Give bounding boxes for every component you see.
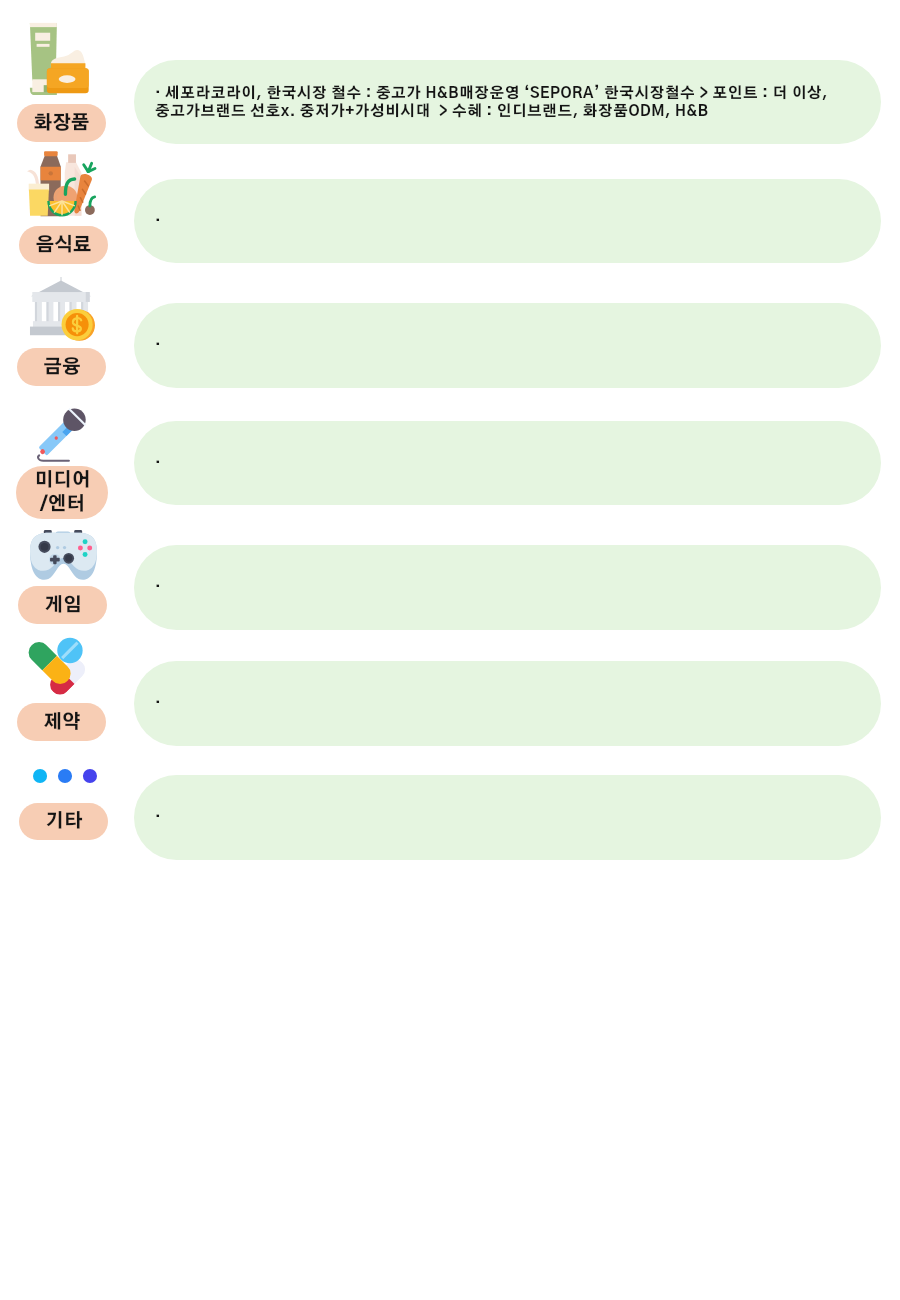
staticText: · [155, 456, 161, 471]
button[interactable]: 제약 [17, 703, 106, 741]
staticText: · 세포라코라이, 한국시장 철수 : 중고가 H&B매장운영 ‘SEPORA’… [155, 86, 829, 119]
staticText: 음식료 [35, 236, 92, 255]
staticText: · [155, 810, 161, 825]
button[interactable]: 미디어 아이콘 [37, 409, 85, 462]
button[interactable]: 제약 아이콘 [26, 637, 85, 693]
button[interactable]: 음식료 아이콘 [27, 151, 95, 217]
staticText: · [155, 214, 161, 229]
button[interactable]: · [134, 179, 881, 263]
button[interactable]: 금융 아이콘 [28, 277, 94, 341]
button[interactable]: · [134, 661, 881, 746]
button[interactable]: · [134, 421, 881, 505]
button[interactable]: · [134, 545, 881, 630]
button[interactable]: 게임 아이콘 [29, 530, 98, 581]
staticText: 화장품 [33, 114, 90, 133]
staticText: 기타 [45, 812, 83, 831]
staticText: · [155, 580, 161, 595]
staticText: · [155, 696, 161, 711]
button[interactable]: 기타 [19, 803, 108, 840]
staticText: 게임 [44, 596, 82, 615]
button[interactable]: 음식료 [19, 226, 108, 264]
button[interactable]: 화장품 아이콘 [29, 22, 89, 95]
staticText: 미디어 /엔터 [34, 471, 91, 514]
button[interactable]: 화장품 [17, 104, 106, 142]
button[interactable]: · 세포라코라이, 한국시장 철수 : 중고가 H&B매장운영 ‘SEPORA’… [134, 60, 881, 144]
staticText: 제약 [43, 713, 81, 732]
button[interactable]: · [134, 775, 881, 860]
button[interactable]: · [134, 303, 881, 388]
button[interactable]: 미디어 /엔터 [16, 466, 108, 519]
button[interactable]: 기타 아이콘 [33, 766, 97, 786]
button[interactable]: 금융 [17, 348, 106, 386]
staticText: · [155, 338, 161, 353]
staticText: 금융 [43, 358, 81, 377]
button[interactable]: 게임 [18, 586, 107, 624]
